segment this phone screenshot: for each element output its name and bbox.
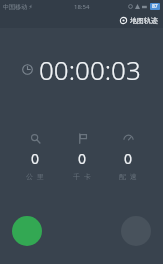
staticText: 配 速 [119, 172, 137, 182]
staticText: 0 [78, 149, 87, 168]
staticText: 87 [152, 3, 158, 10]
staticText: 公 里 [26, 172, 44, 182]
staticText: 地图轨迹 [130, 16, 158, 25]
button[interactable]: 0 [20, 131, 50, 184]
staticText: 0 [124, 149, 133, 168]
staticText: 千 卡 [73, 172, 91, 182]
button[interactable]: 0 [67, 131, 97, 184]
button[interactable]: 0 [113, 131, 143, 184]
staticText: 中国移动 ⚡ [3, 3, 33, 11]
button[interactable]: Stop [121, 216, 151, 246]
button[interactable]: 地图轨迹 [115, 14, 163, 27]
staticText: 00:00:03 [39, 52, 141, 87]
staticText: 18:54 [74, 3, 90, 11]
button[interactable]: Pause [12, 216, 42, 246]
staticText: 0 [31, 149, 40, 168]
